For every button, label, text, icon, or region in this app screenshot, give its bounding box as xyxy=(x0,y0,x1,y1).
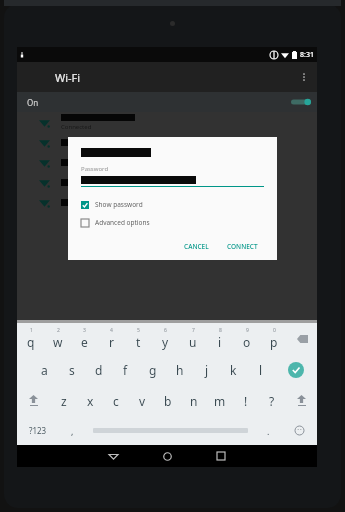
button[interactable]: More options xyxy=(291,64,317,90)
staticText: w xyxy=(53,334,63,350)
staticText: 5 xyxy=(137,327,140,334)
button[interactable]: Home xyxy=(140,445,194,467)
button[interactable]: Backspace xyxy=(287,323,317,354)
button[interactable]: s xyxy=(58,354,85,385)
button[interactable]: CONNECT xyxy=(221,239,264,254)
button[interactable]: Back xyxy=(86,445,140,467)
staticText: Password xyxy=(81,165,109,173)
button[interactable]: 2 xyxy=(44,323,71,354)
button[interactable]: . xyxy=(255,416,282,445)
staticText: 8 xyxy=(219,327,222,334)
button[interactable] xyxy=(17,192,317,212)
staticText: t xyxy=(136,334,141,350)
staticText: Connected xyxy=(61,123,92,131)
staticText: ? xyxy=(269,393,275,409)
button[interactable]: CANCEL xyxy=(178,239,215,254)
button[interactable]: x xyxy=(77,385,103,416)
staticText: p xyxy=(270,334,278,350)
button[interactable]: 3 xyxy=(71,323,98,354)
button[interactable]: On xyxy=(17,92,317,112)
button[interactable]: 5 xyxy=(125,323,152,354)
staticText: q xyxy=(27,334,35,350)
button[interactable]: Advanced options xyxy=(81,218,150,227)
staticText: r xyxy=(109,334,114,350)
staticText: CONNECT xyxy=(227,242,258,251)
staticText: Advanced options xyxy=(95,218,150,227)
staticText: k xyxy=(230,362,237,378)
button[interactable]: n xyxy=(181,385,207,416)
staticText: 9 xyxy=(246,327,249,334)
staticText: y xyxy=(162,334,169,350)
staticText: , xyxy=(71,425,74,437)
staticText: CANCEL xyxy=(184,242,209,251)
staticText: u xyxy=(189,334,197,350)
staticText: 8:31 xyxy=(300,50,314,60)
staticText: s xyxy=(69,362,75,378)
button[interactable]: Shift xyxy=(17,385,50,416)
staticText: c xyxy=(113,393,119,409)
staticText: o xyxy=(243,334,251,350)
staticText: h xyxy=(176,362,184,378)
staticText: f xyxy=(123,362,128,378)
button[interactable]: Show password xyxy=(81,200,143,209)
button[interactable]: ?123 xyxy=(17,416,59,445)
button[interactable]: 7 xyxy=(179,323,206,354)
button[interactable]: Space xyxy=(86,416,255,445)
button[interactable]: j xyxy=(193,354,220,385)
staticText: j xyxy=(205,362,209,378)
button[interactable]: l xyxy=(247,354,274,385)
staticText: l xyxy=(259,362,263,378)
button[interactable]: ? xyxy=(259,385,285,416)
staticText: x xyxy=(87,393,94,409)
button[interactable]: h xyxy=(166,354,193,385)
button[interactable] xyxy=(17,172,317,192)
staticText: ?123 xyxy=(29,425,47,436)
staticText: m xyxy=(214,393,226,409)
staticText: 6 xyxy=(164,327,167,334)
button[interactable] xyxy=(17,152,317,172)
button[interactable]: Connected xyxy=(17,112,317,132)
staticText: n xyxy=(190,393,198,409)
button[interactable]: ! xyxy=(233,385,259,416)
staticText: ! xyxy=(244,393,248,409)
button[interactable]: m xyxy=(207,385,233,416)
staticText: 3 xyxy=(83,327,86,334)
button[interactable]: Shift xyxy=(285,385,317,416)
button[interactable]: 1 xyxy=(17,323,44,354)
staticText: i xyxy=(218,334,222,350)
button[interactable]: 0 xyxy=(260,323,287,354)
button[interactable]: 4 xyxy=(98,323,125,354)
button[interactable]: v xyxy=(129,385,155,416)
staticText: v xyxy=(139,393,146,409)
button[interactable]: 8 xyxy=(206,323,233,354)
button[interactable]: Recents xyxy=(194,445,248,467)
staticText: a xyxy=(41,362,48,378)
staticText: 4 xyxy=(110,327,113,334)
button[interactable] xyxy=(17,132,317,152)
staticText: 2 xyxy=(57,327,60,334)
button[interactable]: a xyxy=(31,354,58,385)
button[interactable]: c xyxy=(103,385,129,416)
staticText: d xyxy=(95,362,103,378)
button[interactable]: Emoji xyxy=(282,416,317,445)
staticText: z xyxy=(61,393,67,409)
staticText: g xyxy=(149,362,157,378)
button[interactable]: Enter xyxy=(274,354,317,385)
button[interactable]: f xyxy=(112,354,139,385)
staticText: b xyxy=(164,393,172,409)
staticText: 1 xyxy=(30,327,33,334)
button[interactable]: d xyxy=(85,354,112,385)
staticText: 7 xyxy=(192,327,195,334)
staticText: e xyxy=(81,334,88,350)
button[interactable]: b xyxy=(155,385,181,416)
staticText: On xyxy=(27,97,39,108)
button[interactable]: 9 xyxy=(233,323,260,354)
button[interactable]: g xyxy=(139,354,166,385)
button[interactable]: , xyxy=(59,416,86,445)
button[interactable]: z xyxy=(50,385,77,416)
staticText: 0 xyxy=(273,327,276,334)
staticText: Show password xyxy=(95,200,143,209)
staticText: Wi-Fi xyxy=(55,70,81,85)
button[interactable]: k xyxy=(220,354,247,385)
button[interactable]: 6 xyxy=(152,323,179,354)
